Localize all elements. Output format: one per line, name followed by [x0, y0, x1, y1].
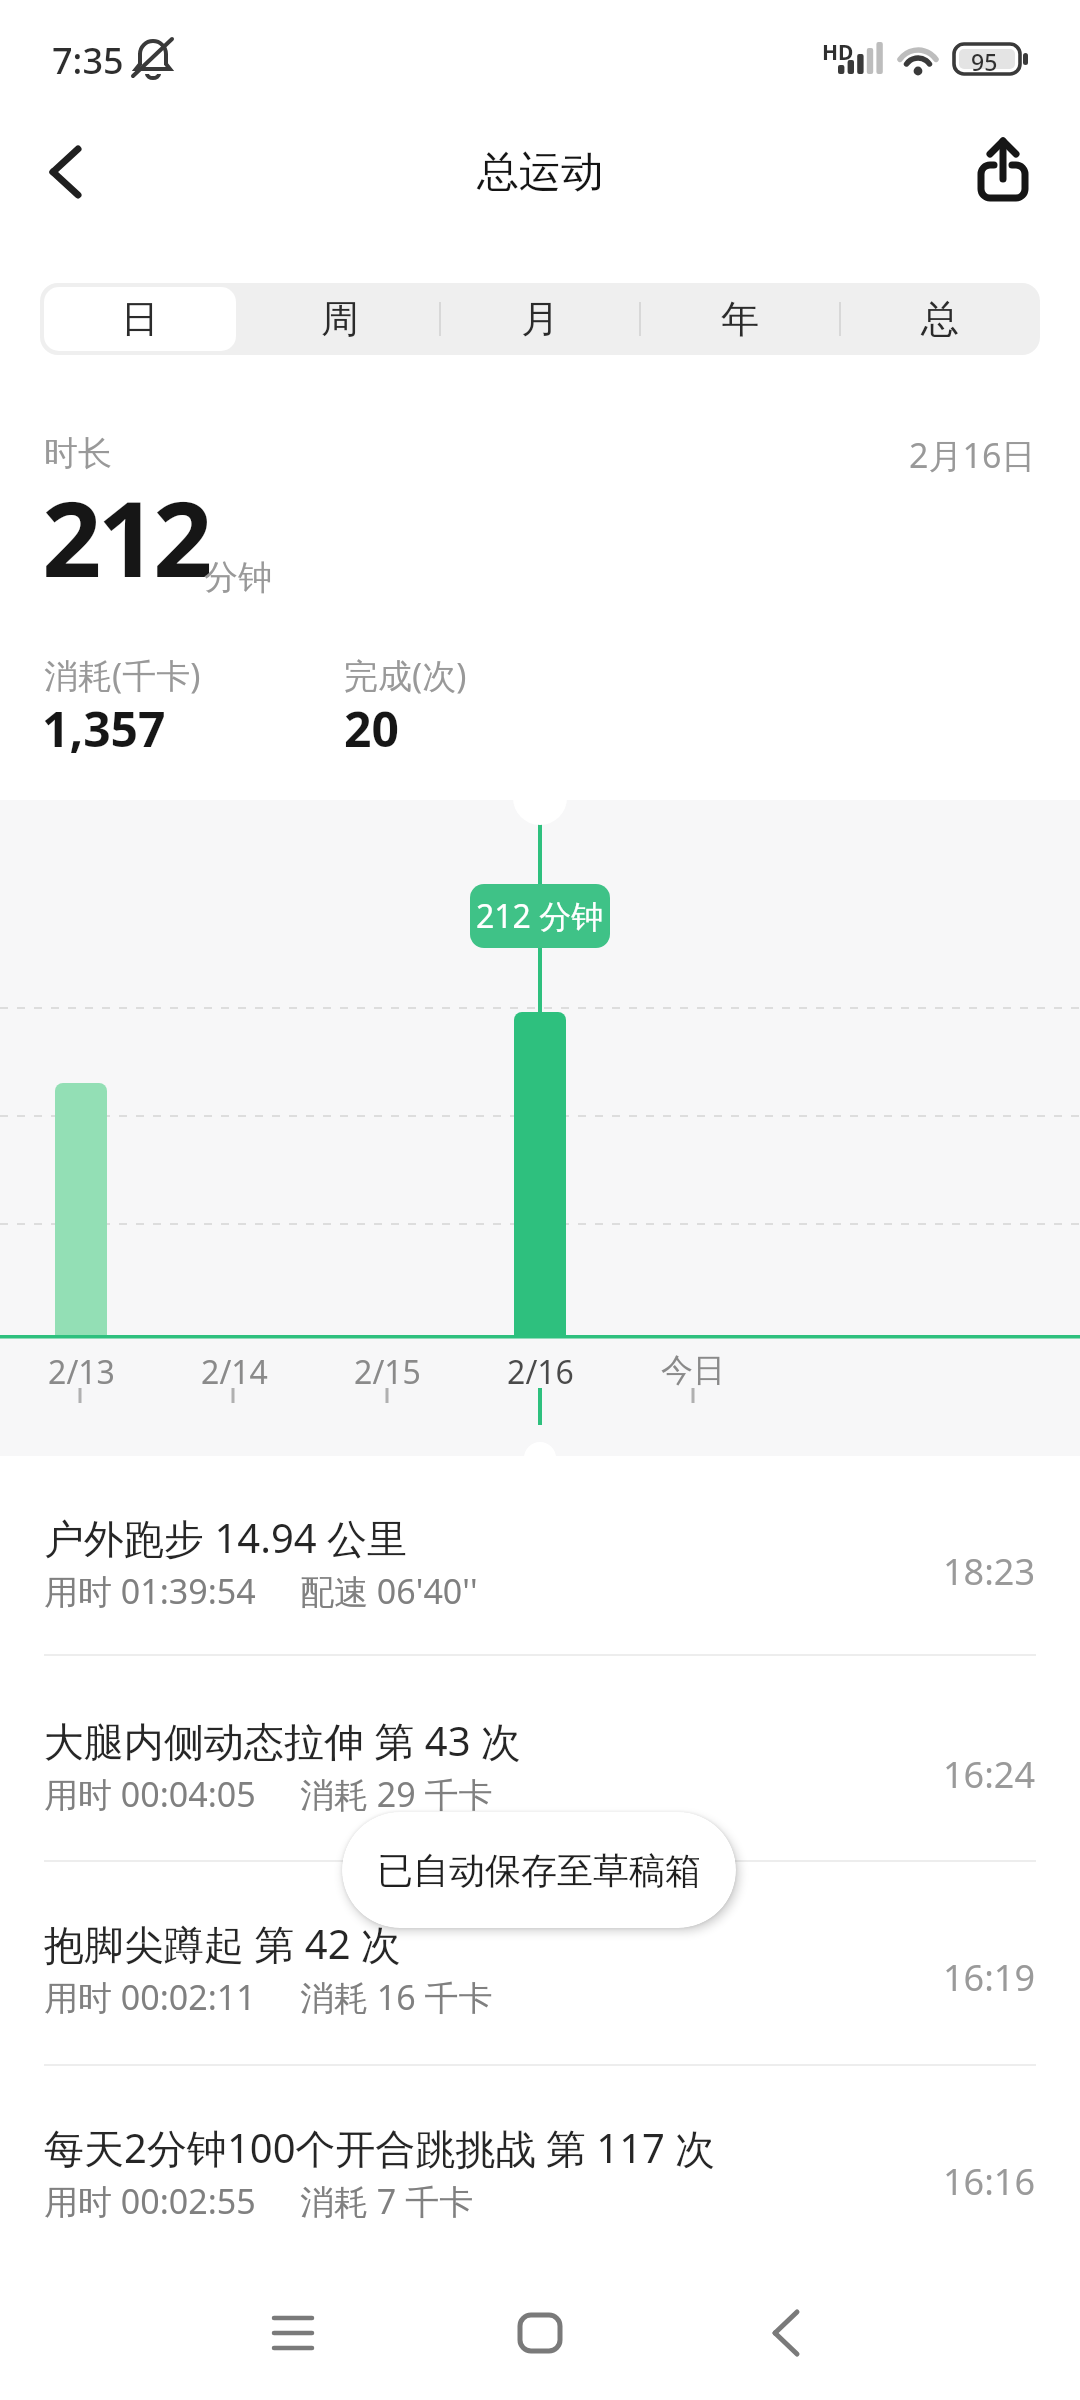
staticText: 212 — [42, 466, 209, 608]
staticText: 2/15 — [354, 1350, 421, 1394]
staticText: 7:35 — [52, 36, 124, 85]
button[interactable]: 户外跑步 14.94 公里 — [0, 1496, 1080, 1646]
staticText: HD — [822, 38, 854, 67]
staticText: 2/14 — [201, 1350, 268, 1394]
button[interactable] — [500, 2303, 580, 2363]
button[interactable]: 总 — [840, 283, 1040, 355]
button[interactable]: 每天2分钟100个开合跳挑战 第 117 次 — [0, 2106, 1080, 2256]
staticText: 用时 00:02:55 — [44, 2178, 256, 2224]
button[interactable] — [253, 2303, 333, 2363]
staticText: 2月16日 — [909, 432, 1036, 478]
button[interactable]: 大腿内侧动态拉伸 第 43 次 — [0, 1699, 1080, 1849]
staticText: 年 — [721, 295, 759, 343]
staticText: 212 分钟 — [476, 894, 604, 938]
staticText: 消耗(千卡) — [44, 652, 201, 698]
staticText: 总 — [921, 295, 959, 343]
button[interactable]: 抱脚尖蹲起 第 42 次 — [0, 1902, 1080, 2052]
button[interactable] — [28, 132, 100, 212]
staticText: 用时 00:02:11 — [44, 1974, 256, 2020]
staticText: 16:19 — [943, 1953, 1036, 2002]
staticText: 大腿内侧动态拉伸 第 43 次 — [44, 1713, 521, 1768]
staticText: 2/13 — [48, 1350, 115, 1394]
staticText: 消耗 29 千卡 — [300, 1771, 493, 1817]
staticText: 2/16 — [507, 1350, 574, 1394]
staticText: 分钟 — [204, 556, 272, 599]
staticText: 时长 — [44, 432, 112, 475]
staticText: 消耗 7 千卡 — [300, 2178, 474, 2224]
button[interactable] — [958, 126, 1044, 214]
staticText: 完成(次) — [344, 652, 467, 698]
staticText: 用时 00:04:05 — [44, 1771, 256, 1817]
staticText: 月 — [521, 295, 559, 343]
staticText: 日 — [121, 295, 159, 343]
button[interactable]: 年 — [640, 283, 840, 355]
button[interactable]: 日 — [40, 283, 240, 355]
staticText: 用时 01:39:54 — [44, 1568, 256, 1614]
staticText: 户外跑步 14.94 公里 — [44, 1510, 408, 1565]
staticText: 总运动 — [477, 146, 603, 199]
staticText: 20 — [344, 696, 399, 761]
staticText: 1,357 — [42, 696, 166, 761]
button[interactable]: 月 — [440, 283, 640, 355]
staticText: 16:24 — [943, 1750, 1036, 1799]
staticText: 已自动保存至草稿箱 — [377, 1848, 701, 1893]
button[interactable]: 周 — [240, 283, 440, 355]
staticText: 配速 06'40'' — [300, 1568, 478, 1614]
staticText: 消耗 16 千卡 — [300, 1974, 493, 2020]
staticText: 抱脚尖蹲起 第 42 次 — [44, 1916, 401, 1971]
staticText: 每天2分钟100个开合跳挑战 第 117 次 — [44, 2120, 716, 2175]
staticText: 95 — [971, 46, 998, 77]
staticText: 18:23 — [943, 1547, 1036, 1596]
staticText: 周 — [321, 295, 359, 343]
button[interactable] — [746, 2303, 826, 2363]
staticText: 16:16 — [943, 2157, 1036, 2206]
staticText: 今日 — [661, 1350, 725, 1390]
